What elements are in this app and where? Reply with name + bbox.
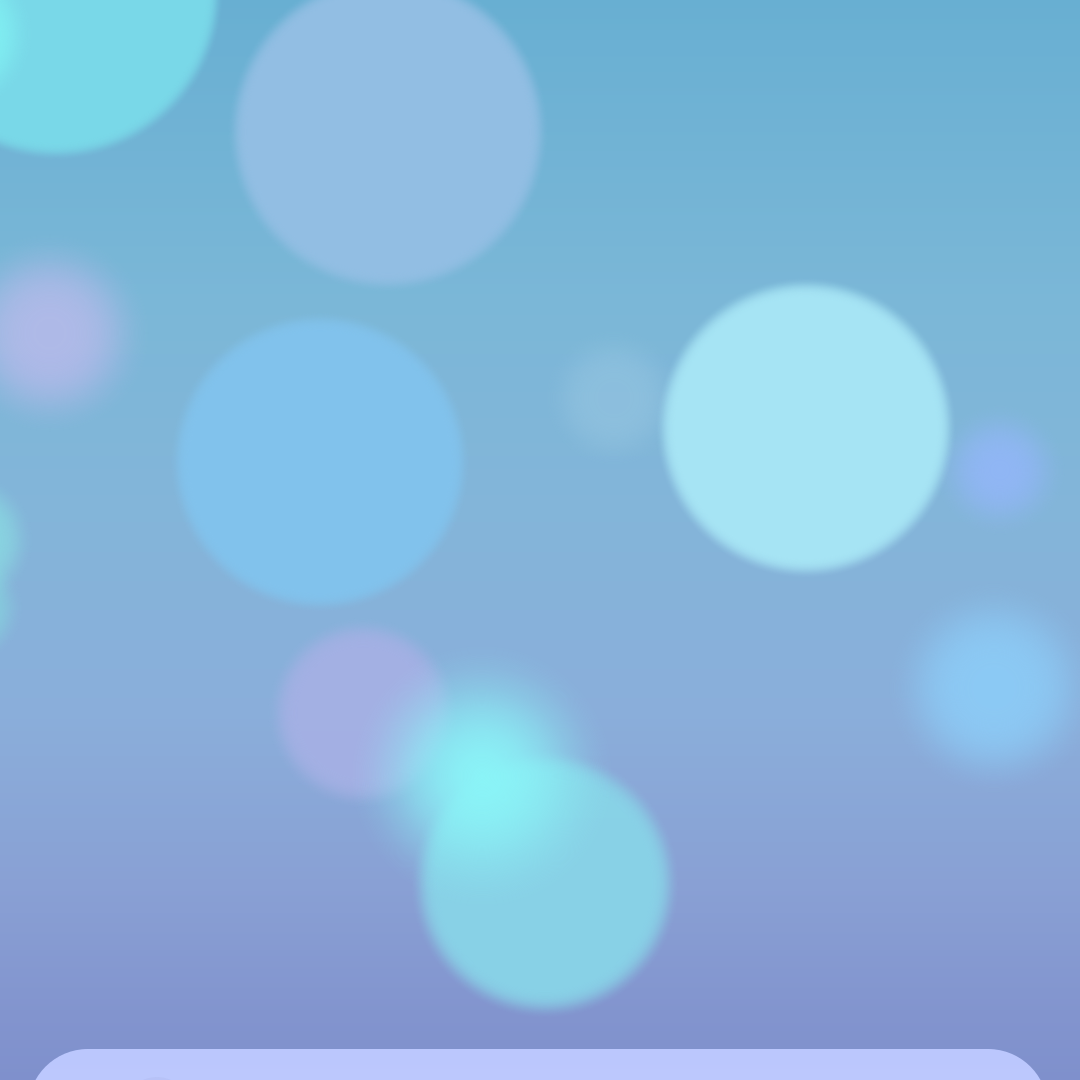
button[interactable]: Sheet [28, 1049, 1048, 1080]
